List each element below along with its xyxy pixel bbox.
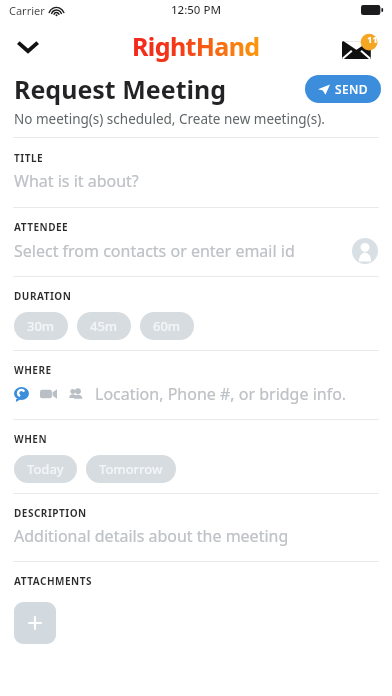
button[interactable]: Today: [14, 455, 77, 483]
staticText: DESCRIPTION: [14, 506, 87, 520]
staticText: 45m: [90, 317, 118, 335]
staticText: Carrier: [9, 3, 45, 18]
button[interactable]: 60m: [140, 312, 194, 340]
staticText: Today: [27, 460, 64, 478]
staticText: SEND: [335, 81, 368, 97]
other: Video call: [40, 388, 57, 400]
staticText: ATTENDEE: [14, 220, 69, 234]
staticText: RightHand: [132, 29, 260, 63]
staticText: TITLE: [14, 151, 44, 165]
staticText: No meeting(s) scheduled, Create new meet…: [14, 110, 325, 128]
other: Phone call: [14, 387, 29, 402]
button[interactable]: Tomorrow: [86, 455, 176, 483]
button[interactable]: What is it about?: [0, 165, 392, 197]
staticText: What is it about?: [14, 170, 139, 192]
other: Contact avatar: [352, 238, 378, 264]
other: Add people: [68, 386, 84, 402]
staticText: Request Meeting: [14, 72, 227, 106]
staticText: 11: [367, 33, 378, 45]
staticText: 60m: [153, 317, 181, 335]
button[interactable]: Phone call: [0, 377, 392, 411]
button[interactable]: SEND: [305, 75, 381, 103]
staticText: Location, Phone #, or bridge info.: [95, 383, 347, 405]
staticText: 12:50 PM: [171, 2, 222, 18]
staticText: Tomorrow: [99, 460, 163, 478]
button[interactable]: Add attachment: [14, 602, 56, 644]
button[interactable]: 30m: [14, 312, 68, 340]
button[interactable]: Additional details about the meeting: [0, 520, 392, 552]
staticText: WHERE: [14, 363, 52, 377]
staticText: Select from contacts or enter email id: [14, 240, 295, 262]
staticText: ATTACHMENTS: [14, 574, 92, 588]
staticText: WHEN: [14, 432, 48, 446]
button[interactable]: Messages, 11 unread: [338, 22, 386, 70]
staticText: DURATION: [14, 289, 72, 303]
button[interactable]: 45m: [77, 312, 131, 340]
button[interactable]: Collapse: [6, 24, 50, 68]
staticText: 30m: [27, 317, 55, 335]
button[interactable]: Select from contacts or enter email id: [0, 234, 392, 268]
staticText: Additional details about the meeting: [14, 525, 289, 547]
